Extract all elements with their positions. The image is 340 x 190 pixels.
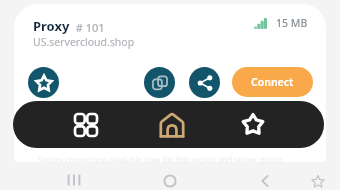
staticText: Proxy — [33, 17, 70, 35]
button[interactable]: Connect — [232, 67, 313, 97]
staticText: Secure connection available now for this… — [38, 154, 283, 165]
button[interactable]: Share — [189, 67, 220, 98]
button[interactable]: Apps — [63, 102, 109, 148]
button[interactable]: Favorite — [28, 67, 59, 98]
button[interactable]: Copy — [144, 67, 175, 98]
button[interactable]: Favorites — [230, 101, 276, 147]
staticText: Connect — [251, 75, 294, 89]
button[interactable]: Home — [149, 102, 195, 148]
staticText: US.servercloud.shop — [33, 35, 135, 49]
staticText: 15 MB — [276, 16, 308, 30]
staticText: # 101 — [70, 20, 105, 35]
